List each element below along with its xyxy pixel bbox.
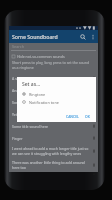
- staticText: OK: [85, 114, 90, 119]
- staticText: Some other sound title: [12, 100, 90, 105]
- button[interactable]: Item options: [90, 98, 98, 106]
- button[interactable]: Notification tone: [17, 99, 96, 105]
- button[interactable]: Item options: [90, 110, 98, 118]
- button[interactable]: Another one: [9, 86, 98, 94]
- staticText: Some Soundboard: [12, 33, 58, 40]
- staticText: Search: [12, 44, 25, 49]
- button[interactable]: Item options: [90, 134, 98, 142]
- button[interactable]: Item options: [90, 147, 98, 155]
- staticText: Set as...: [22, 81, 41, 88]
- staticText: Some title sound here: [12, 124, 90, 129]
- button[interactable]: There was another little thing to add ar…: [9, 160, 98, 170]
- button[interactable]: Ringtone: [17, 91, 96, 97]
- button[interactable]: Item options: [90, 86, 98, 94]
- staticText: Finger: [12, 136, 90, 141]
- staticText: I went ahead to add a much longer title …: [12, 146, 90, 156]
- button[interactable]: Some title sound here: [9, 122, 98, 130]
- button[interactable]: Hide not-so-common sounds: [12, 53, 98, 59]
- button[interactable]: Some other sound title: [9, 98, 98, 106]
- staticText: Ringtone: [29, 92, 46, 97]
- button[interactable]: OK: [82, 113, 93, 120]
- staticText: A sound name goes in here: [12, 76, 90, 81]
- button[interactable]: Item options: [90, 161, 98, 169]
- staticText: Short press to play, long press to set t…: [12, 60, 93, 70]
- button[interactable]: I went ahead to add a much longer title …: [9, 146, 98, 156]
- button[interactable]: Item options: [90, 74, 98, 82]
- staticText: Another one: [12, 88, 90, 93]
- staticText: Yet another sound: [12, 112, 90, 117]
- staticText: CANCEL: [66, 114, 79, 119]
- button[interactable]: More options: [88, 32, 97, 41]
- button[interactable]: Yet another sound: [9, 110, 98, 118]
- staticText: Notification tone: [29, 100, 59, 105]
- button[interactable]: CANCEL: [63, 113, 82, 120]
- button[interactable]: Item options: [90, 122, 98, 130]
- staticText: There was another little thing to add ar…: [12, 160, 90, 170]
- button[interactable]: Finger: [9, 134, 98, 142]
- button[interactable]: A sound name goes in here: [9, 74, 98, 82]
- staticText: Hide not-so-common sounds: [17, 54, 65, 59]
- button[interactable]: Search: [77, 31, 88, 42]
